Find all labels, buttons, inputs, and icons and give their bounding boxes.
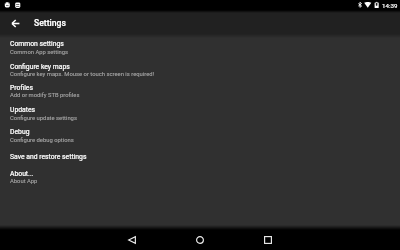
button[interactable]: Navigate up (4, 12, 27, 35)
button[interactable]: About... (0, 167, 400, 188)
staticText: Settings (34, 18, 66, 28)
button[interactable]: Common settings (0, 37, 400, 58)
staticText: About App (10, 178, 38, 185)
staticText: Common App settings (10, 49, 69, 56)
staticText: Common settings (10, 40, 64, 48)
staticText: Debug (10, 128, 30, 136)
staticText: Configure key maps. Mouse or touch scree… (10, 71, 155, 78)
button[interactable]: Configure key maps (0, 60, 400, 81)
button[interactable]: Updates (0, 103, 400, 124)
staticText: Configure key maps (10, 63, 70, 71)
staticText: Updates (10, 106, 36, 114)
staticText: Configure debug options (10, 137, 74, 144)
button[interactable]: Profiles (0, 81, 400, 102)
staticText: Profiles (10, 84, 33, 92)
button[interactable]: Recent apps (258, 230, 278, 250)
staticText: 14:39 (382, 2, 398, 9)
button[interactable]: Save and restore settings (0, 150, 400, 165)
button[interactable]: Back (122, 230, 142, 250)
staticText: Configure update settings (10, 115, 77, 122)
staticText: Save and restore settings (10, 153, 87, 161)
button[interactable]: Debug (0, 125, 400, 146)
button[interactable]: Home (190, 230, 210, 250)
staticText: About... (10, 170, 34, 178)
staticText: Add or modify STB profiles (10, 92, 80, 99)
